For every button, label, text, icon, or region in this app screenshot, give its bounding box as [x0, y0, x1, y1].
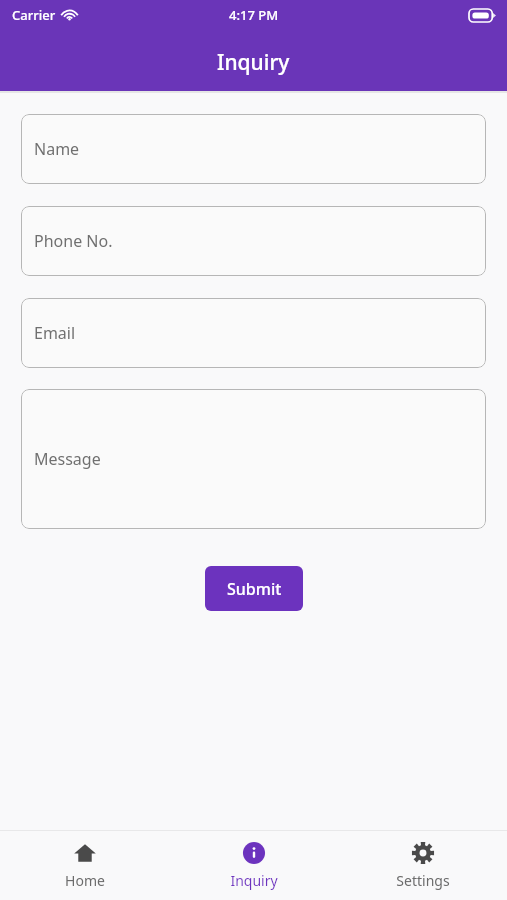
button[interactable]: Settings — [338, 831, 507, 900]
staticText: Inquiry — [230, 871, 278, 890]
staticText: Home — [65, 871, 105, 890]
staticText: Submit — [227, 578, 282, 600]
staticText: Name — [34, 138, 80, 160]
staticText: Settings — [396, 871, 450, 890]
staticText: Carrier — [12, 6, 56, 24]
staticText: Inquiry — [217, 48, 290, 77]
button[interactable]: Message — [21, 389, 486, 529]
staticText: 4:17 PM — [229, 6, 279, 24]
button[interactable]: Phone No. — [21, 206, 486, 276]
staticText: Phone No. — [34, 230, 113, 252]
button[interactable]: Email — [21, 298, 486, 368]
staticText: Email — [34, 322, 76, 344]
button[interactable]: Submit — [205, 566, 303, 611]
button[interactable]: Inquiry — [169, 831, 338, 900]
button[interactable]: Name — [21, 114, 486, 184]
button[interactable]: Home — [0, 831, 169, 900]
staticText: Message — [34, 448, 101, 470]
